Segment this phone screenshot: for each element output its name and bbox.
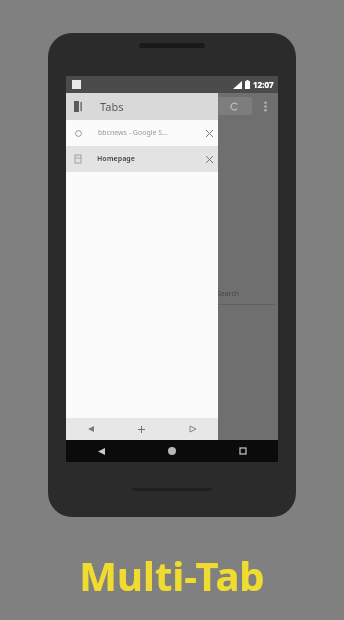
staticText: bbcnews - Google S... <box>98 128 200 138</box>
button[interactable]: Close tab <box>200 146 218 172</box>
button[interactable]: Reload <box>216 97 252 115</box>
button[interactable]: Forward <box>167 418 218 440</box>
button[interactable]: Close tab <box>200 120 218 146</box>
staticText: Homepage <box>97 154 200 164</box>
staticText: Multi-Tab <box>79 548 265 602</box>
staticText: Tabs <box>100 99 124 114</box>
button[interactable]: Tabs <box>66 93 218 120</box>
button[interactable]: More options <box>258 98 272 114</box>
staticText: 12:07 <box>253 79 274 90</box>
button[interactable]: Back <box>66 440 136 462</box>
button[interactable]: Homepage <box>66 146 218 172</box>
button[interactable]: New tab <box>116 418 167 440</box>
button[interactable]: Back <box>66 418 116 440</box>
button[interactable]: Home <box>136 440 207 462</box>
staticText: Search <box>217 289 240 299</box>
button[interactable]: Recents <box>207 440 278 462</box>
button[interactable]: bbcnews - Google S... <box>66 120 218 146</box>
